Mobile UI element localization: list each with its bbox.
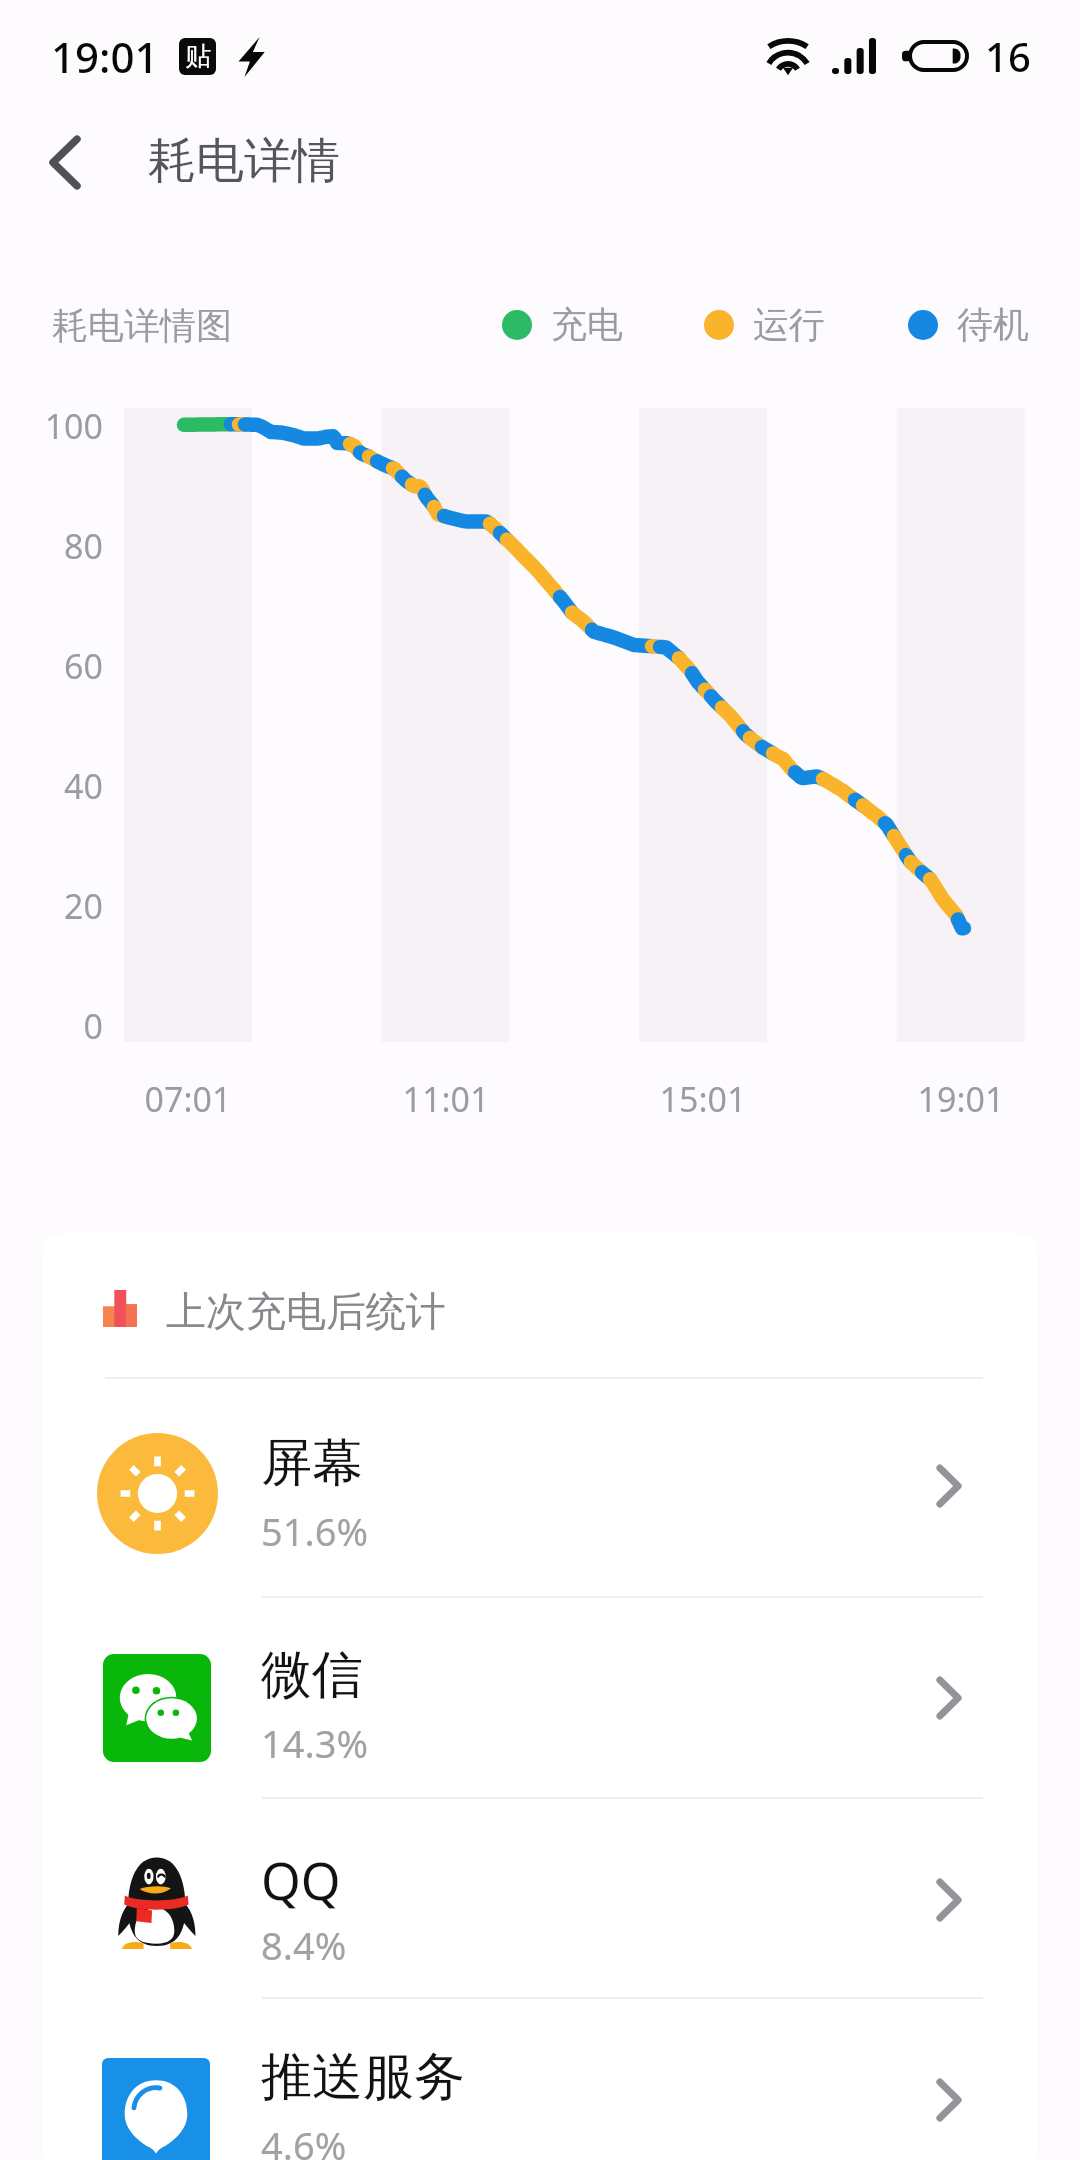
staticText: 运行 — [753, 302, 825, 347]
staticText: 耗电详情图 — [52, 303, 232, 348]
staticText: 14.3% — [261, 1717, 368, 1769]
staticText: 80 — [0, 523, 103, 569]
staticText: 60 — [0, 643, 103, 689]
button[interactable]: 推送服务 — [42, 2000, 1038, 2160]
staticText: QQ — [261, 1845, 341, 1914]
staticText: 屏幕 — [261, 1431, 363, 1495]
button[interactable]: 微信 — [42, 1598, 1038, 1798]
staticText: 07:01 — [98, 1076, 278, 1122]
staticText: 充电 — [551, 302, 623, 347]
staticText: 100 — [0, 403, 103, 449]
staticText: 贴 — [185, 40, 211, 73]
button[interactable]: QQ — [42, 1800, 1038, 2000]
staticText: 8.4% — [261, 1919, 347, 1971]
button[interactable]: 屏幕 — [42, 1386, 1038, 1586]
staticText: 待机 — [957, 302, 1029, 347]
staticText: 51.6% — [261, 1505, 368, 1557]
staticText: 16 — [985, 29, 1031, 83]
staticText: 微信 — [261, 1643, 363, 1707]
button[interactable]: Back — [17, 114, 113, 210]
staticText: 15:01 — [613, 1076, 793, 1122]
staticText: 11:01 — [356, 1076, 536, 1122]
staticText: 19:01 — [871, 1076, 1051, 1122]
staticText: 19:01 — [51, 28, 159, 85]
staticText: 20 — [0, 883, 103, 929]
staticText: 上次充电后统计 — [166, 1286, 446, 1336]
staticText: 耗电详情 — [148, 131, 340, 191]
staticText: 40 — [0, 763, 103, 809]
staticText: 推送服务 — [261, 2045, 465, 2109]
staticText: 0 — [0, 1003, 103, 1049]
staticText: 4.6% — [261, 2119, 347, 2160]
